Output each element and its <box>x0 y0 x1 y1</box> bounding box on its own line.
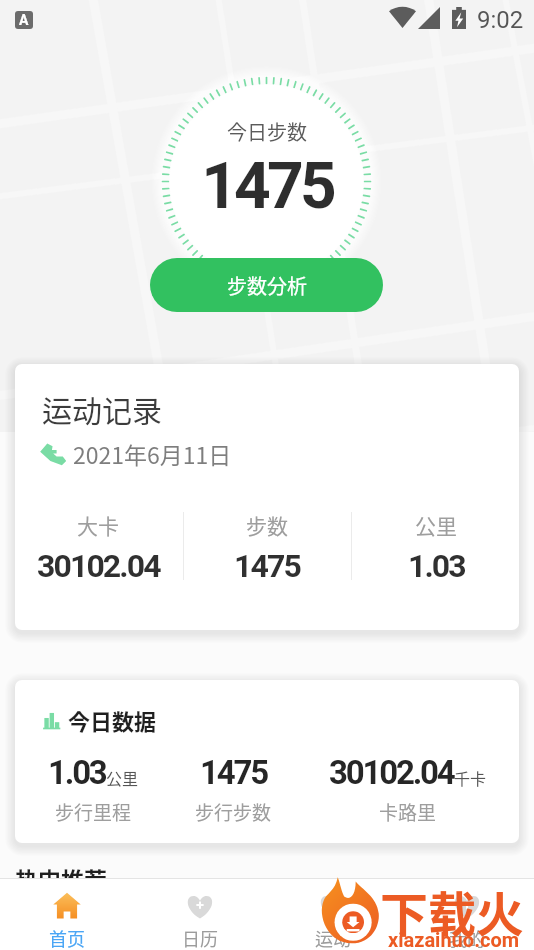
staticText: 我的 <box>449 925 485 950</box>
staticText: 下载火 <box>380 876 525 946</box>
staticText: 1475 <box>234 547 300 585</box>
staticText: 30102.04 <box>329 753 454 792</box>
other: 首页 <box>53 892 81 920</box>
staticText: 热门推荐 <box>15 862 107 895</box>
staticText: 今日数据 <box>68 704 157 736</box>
staticText: xiazaihuo.com <box>388 928 520 950</box>
staticText: 1475 <box>200 753 267 792</box>
staticText: 1475 <box>0 149 534 224</box>
staticText: 公里 <box>106 766 139 789</box>
button[interactable]: 步数分析 <box>150 258 383 312</box>
staticText: 步数 <box>246 510 288 540</box>
staticText: 步行步数 <box>195 798 272 826</box>
staticText: 运动 <box>315 925 351 950</box>
staticText: 2021年6月11日 <box>73 437 232 470</box>
button[interactable]: 我的 <box>400 879 534 950</box>
staticText: 今日步数 <box>0 117 534 146</box>
staticText: 卡路里 <box>379 798 437 826</box>
button[interactable]: 首页 <box>0 879 133 950</box>
staticText: 30102.04 <box>37 547 160 585</box>
staticText: 1.03 <box>408 547 465 585</box>
staticText: 公里 <box>415 510 457 540</box>
other: 日历 <box>186 892 214 920</box>
staticText: 千卡 <box>454 766 487 789</box>
staticText: 大卡 <box>77 510 119 540</box>
staticText: 9:02 <box>477 6 524 34</box>
staticText: A <box>19 12 29 28</box>
button[interactable]: 日历 <box>133 879 266 950</box>
other: 运动 <box>319 892 347 920</box>
button[interactable]: 运动 <box>266 879 400 950</box>
other: 我的 <box>453 892 481 920</box>
staticText: 步数分析 <box>227 271 307 300</box>
staticText: 运动记录 <box>42 387 162 430</box>
staticText: 步行里程 <box>55 798 132 826</box>
staticText: 首页 <box>49 925 85 950</box>
staticText: 1.03 <box>48 753 106 792</box>
staticText: 日历 <box>182 925 218 950</box>
